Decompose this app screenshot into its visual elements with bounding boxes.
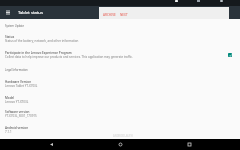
staticText: Status bbox=[5, 35, 197, 39]
staticText: System Update bbox=[5, 24, 25, 28]
button[interactable]: Hardware Version bbox=[0, 76, 240, 91]
staticText: Hardware Version bbox=[5, 80, 197, 84]
staticText: YT-X703L_S001_170915 bbox=[5, 114, 226, 118]
staticText: Tablet status bbox=[18, 10, 43, 16]
staticText: Software version bbox=[5, 110, 197, 114]
staticText: Android version bbox=[5, 126, 197, 130]
staticText: Legal Information bbox=[5, 68, 28, 72]
staticText: Model bbox=[5, 96, 197, 100]
button[interactable]: ARCHIVE bbox=[102, 12, 117, 18]
staticText: Lenovo Tablet YT-X703L bbox=[5, 84, 226, 88]
staticText: ANDROID-AUTH bbox=[113, 134, 133, 138]
staticText: Status of the battery, network, and othe… bbox=[5, 39, 226, 43]
button[interactable]: Android version bbox=[0, 122, 240, 137]
staticText: Collect data to help improve our product… bbox=[5, 55, 226, 59]
button[interactable]: NEXT bbox=[119, 12, 129, 18]
staticText: ARCHIVE bbox=[103, 13, 116, 17]
staticText: Lenovo YT-X703L bbox=[5, 100, 226, 104]
button[interactable]: Back bbox=[45, 139, 57, 150]
button[interactable]: Recents bbox=[183, 139, 195, 150]
button[interactable]: Status bbox=[0, 31, 240, 46]
staticText: Participate in the Lenovo Experience Pro… bbox=[5, 51, 197, 55]
staticText: 7.1.1 bbox=[5, 130, 226, 134]
button[interactable]: Home bbox=[114, 139, 126, 150]
other: Participate toggle bbox=[228, 53, 232, 57]
button[interactable]: Model bbox=[0, 92, 240, 107]
staticText: NEXT bbox=[120, 13, 128, 17]
button[interactable]: Menu bbox=[0, 6, 16, 19]
button[interactable]: Participate in the Lenovo Experience Pro… bbox=[0, 47, 240, 62]
button[interactable]: Software version bbox=[0, 106, 240, 121]
